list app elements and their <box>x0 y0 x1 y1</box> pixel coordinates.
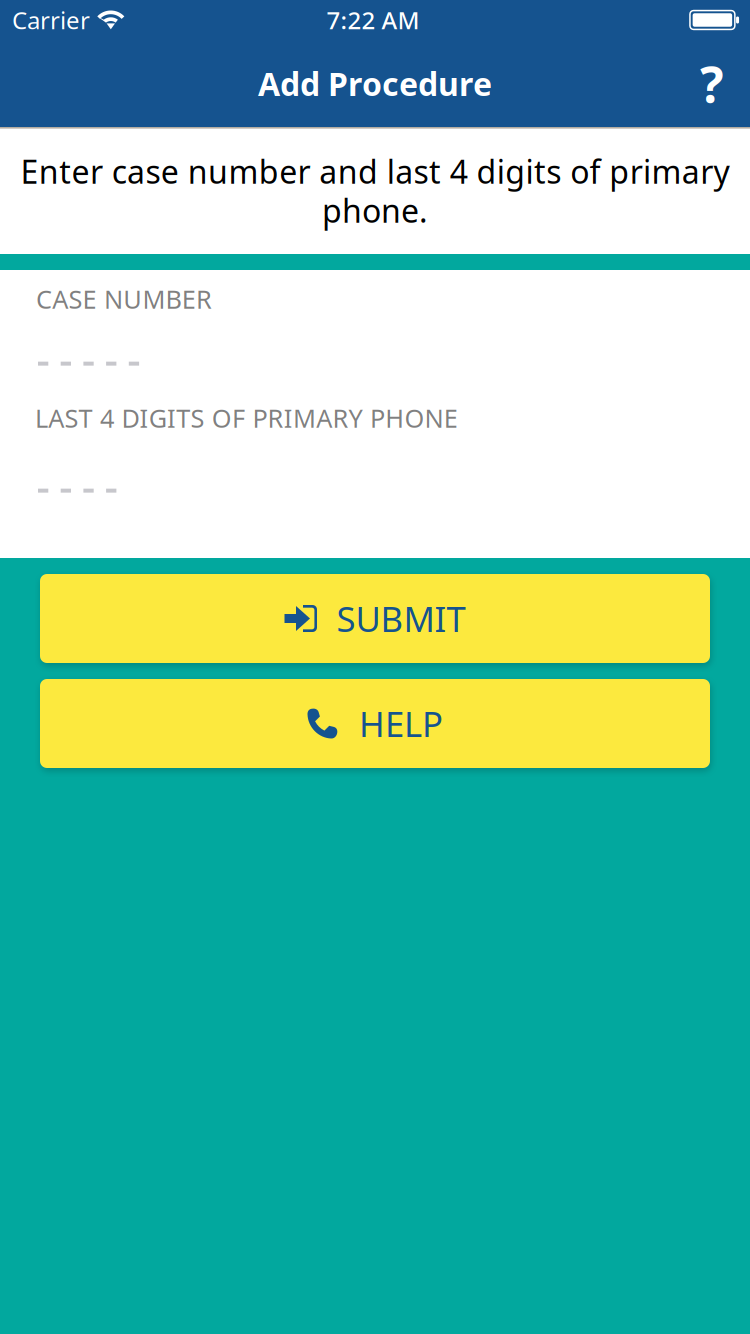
staticText: Enter case number and last 4 digits of p… <box>20 150 730 192</box>
staticText: LAST 4 DIGITS OF PRIMARY PHONE <box>35 401 458 435</box>
staticText: SUBMIT <box>336 595 465 641</box>
button[interactable]: SUBMIT <box>40 574 710 663</box>
staticText: Carrier <box>12 4 90 36</box>
staticText: ? <box>700 51 724 116</box>
button[interactable]: Last 4 digits of primary phone <box>35 401 713 501</box>
button[interactable]: Help <box>681 50 743 116</box>
staticText: 7:22 AM <box>326 4 419 36</box>
button[interactable]: HELP <box>40 679 710 768</box>
staticText: HELP <box>359 700 443 746</box>
staticText: CASE NUMBER <box>36 282 212 316</box>
staticText: Add Procedure <box>258 62 492 105</box>
staticText: phone. <box>322 189 428 231</box>
button[interactable]: Case number <box>36 282 713 374</box>
